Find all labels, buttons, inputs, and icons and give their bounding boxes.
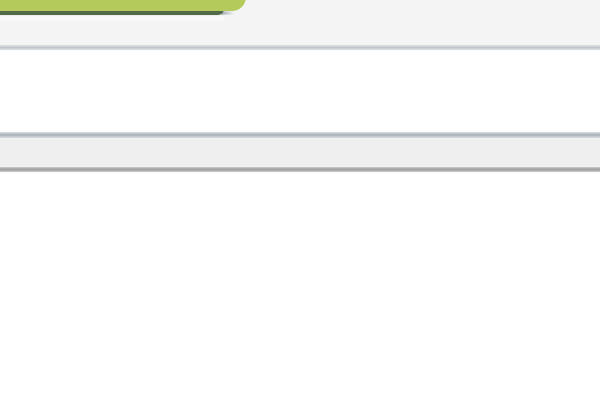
- button[interactable]: App header: [0, 0, 246, 15]
- button[interactable]: Toolbar: [0, 15, 600, 46]
